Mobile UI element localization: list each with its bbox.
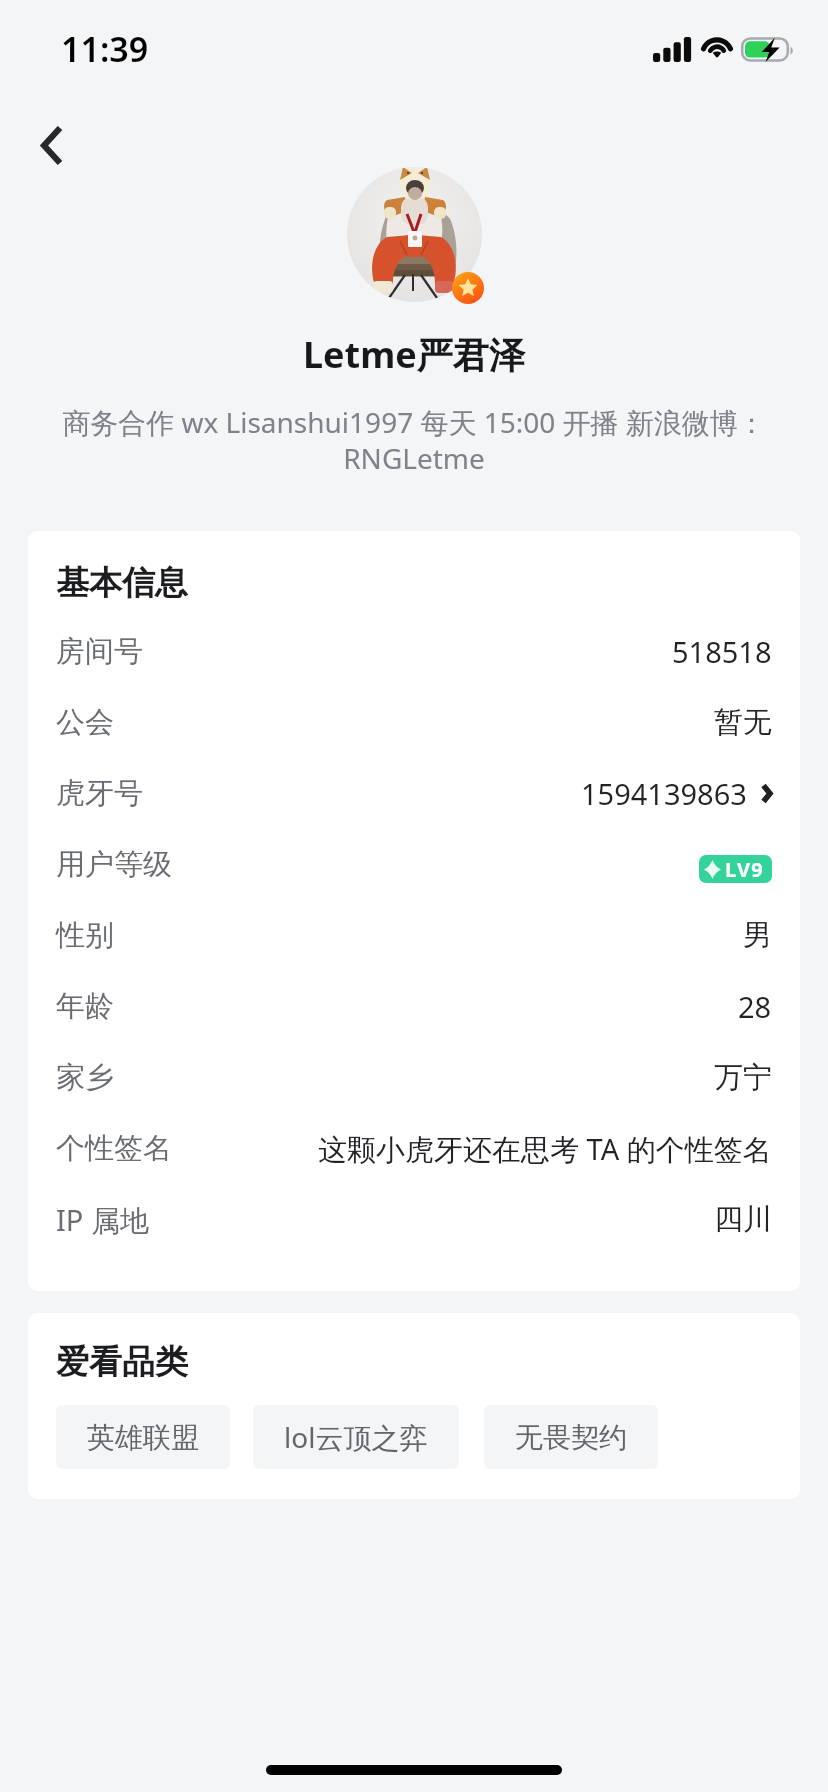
button[interactable]: 无畏契约 [484,1405,658,1469]
button[interactable]: 虎牙号 [56,758,772,829]
staticText: lol云顶之弈 [284,1418,428,1456]
staticText: 年龄 [56,988,114,1025]
staticText: 基本信息 [56,562,188,604]
staticText: 房间号 [56,633,143,670]
staticText: 男 [743,917,772,954]
staticText: Letme严君泽 [303,330,525,379]
staticText: 性别 [56,917,114,954]
staticText: LV9 [725,856,764,883]
button[interactable]: LV9 [699,855,772,883]
staticText: 爱看品类 [56,1341,188,1383]
staticText: 用户等级 [56,846,172,883]
staticText: 万宁 [714,1059,772,1096]
button[interactable]: lol云顶之弈 [253,1405,459,1469]
staticText: 商务合作 wx Lisanshui1997 每天 15:00 开播 新浪微博：R… [56,403,772,477]
staticText: 公会 [56,704,114,741]
staticText: 暂无 [714,704,772,741]
staticText: 28 [738,987,772,1026]
button[interactable]: 英雄联盟 [56,1405,230,1469]
staticText: 个性签名 [56,1130,172,1167]
staticText: 1594139863 [581,774,747,813]
staticText: 518518 [672,632,772,671]
staticText: IP 属地 [56,1200,149,1240]
staticText: 无畏契约 [515,1420,627,1455]
staticText: 这颗小虎牙还在思考 TA 的个性签名 [318,1129,772,1169]
staticText: 四川 [714,1201,772,1238]
staticText: 虎牙号 [56,775,143,812]
staticText: 11:39 [61,26,149,72]
staticText: 家乡 [56,1059,114,1096]
button[interactable]: Back [23,116,81,174]
staticText: 英雄联盟 [87,1420,199,1455]
